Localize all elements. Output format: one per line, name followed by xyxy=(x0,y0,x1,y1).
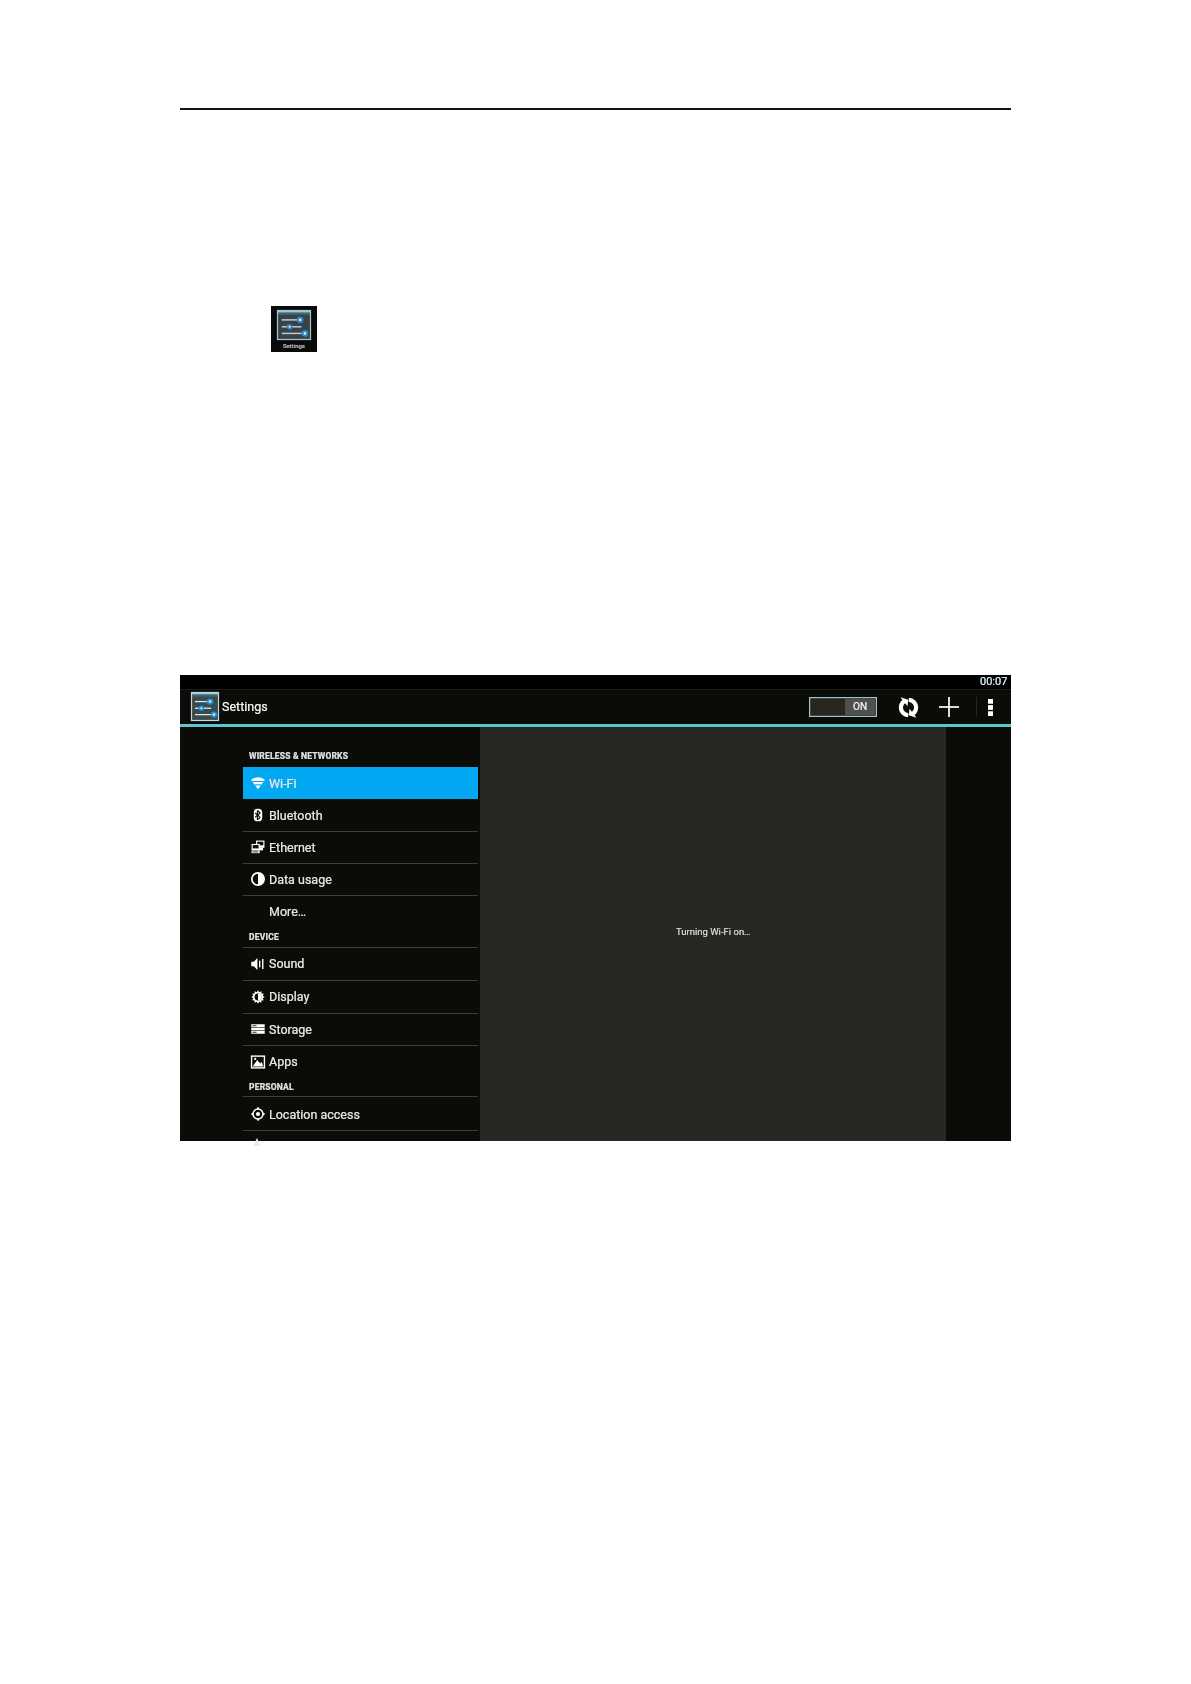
staticText: Settings xyxy=(222,699,268,714)
staticText: ON xyxy=(853,701,868,713)
staticText: Wi-Fi xyxy=(269,776,297,791)
staticText: Location access xyxy=(269,1107,360,1122)
button[interactable]: Scan for networks xyxy=(893,692,923,722)
button[interactable]: More options xyxy=(977,692,1003,722)
button[interactable]: Settings application icon xyxy=(271,306,317,352)
button[interactable]: Location access xyxy=(243,1097,478,1131)
button[interactable]: More… xyxy=(243,895,478,927)
staticText: 00:07 xyxy=(980,675,1008,688)
staticText: Bluetooth xyxy=(269,808,323,823)
staticText: Sound xyxy=(269,956,305,971)
staticText: DEVICE xyxy=(249,932,279,942)
staticText: More… xyxy=(269,904,307,919)
button[interactable]: Add network xyxy=(934,692,964,722)
button[interactable]: Apps xyxy=(243,1045,478,1078)
button[interactable]: Bluetooth xyxy=(243,799,478,831)
button[interactable]: Data usage xyxy=(243,863,478,895)
button[interactable]: Display xyxy=(243,980,478,1013)
staticText: WIRELESS & NETWORKS xyxy=(249,751,349,761)
staticText: Display xyxy=(269,989,310,1004)
staticText: PERSONAL xyxy=(249,1082,294,1092)
staticText: Ethernet xyxy=(269,840,316,855)
staticText: Storage xyxy=(269,1022,312,1037)
button[interactable]: Wi-Fi switch, on xyxy=(809,697,877,717)
button[interactable]: Ethernet xyxy=(243,831,478,863)
button[interactable]: Wi-Fi xyxy=(243,767,478,799)
staticText: Settings xyxy=(283,342,305,349)
button[interactable]: Storage xyxy=(243,1013,478,1045)
staticText: Data usage xyxy=(269,872,332,887)
staticText: Turning Wi-Fi on… xyxy=(676,926,751,937)
button[interactable]: Sound xyxy=(243,947,478,980)
staticText: Apps xyxy=(269,1054,298,1069)
